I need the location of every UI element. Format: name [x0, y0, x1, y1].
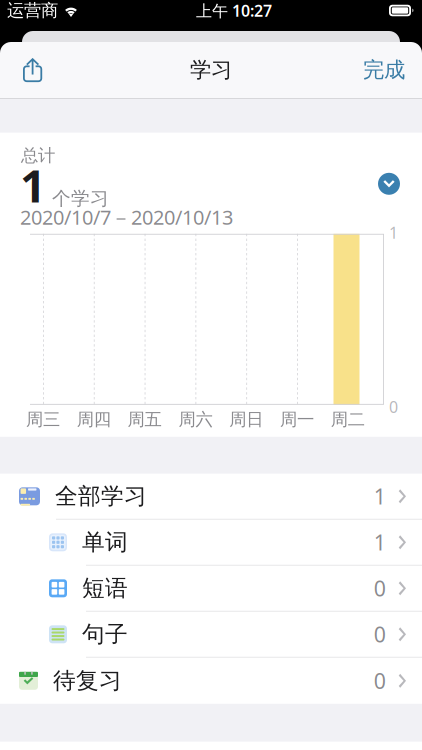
staticText: 1: [389, 222, 398, 243]
staticText: 短语: [82, 574, 128, 602]
staticText: 单词: [82, 528, 128, 556]
staticText: 0: [389, 396, 398, 417]
staticText: 周四: [77, 409, 111, 430]
staticText: 句子: [82, 620, 128, 648]
staticText: 周六: [178, 409, 212, 430]
staticText: 周三: [26, 409, 60, 430]
staticText: 总计: [21, 145, 55, 166]
staticText: 学习: [190, 57, 232, 83]
button[interactable]: Share: [0, 42, 56, 98]
staticText: 周二: [331, 409, 365, 430]
staticText: 1: [20, 155, 46, 215]
button[interactable]: 完成: [346, 42, 422, 98]
button[interactable]: 短语: [0, 566, 422, 612]
button[interactable]: 待复习: [0, 658, 422, 704]
button[interactable]: 单词: [0, 520, 422, 566]
staticText: 0: [374, 574, 386, 602]
staticText: 个学习: [52, 187, 109, 210]
staticText: 1: [374, 482, 386, 510]
staticText: 0: [374, 667, 386, 695]
staticText: 完成: [363, 57, 405, 83]
staticText: 0: [374, 620, 386, 648]
staticText: 运营商: [7, 0, 58, 21]
staticText: 待复习: [53, 667, 122, 695]
staticText: 上午 10:27: [196, 0, 272, 21]
staticText: 2020/10/7－2020/10/13: [20, 204, 233, 230]
staticText: 1: [374, 528, 386, 556]
staticText: 周五: [128, 409, 162, 430]
button[interactable]: Collapse: [378, 173, 400, 195]
button[interactable]: 句子: [0, 612, 422, 658]
staticText: 全部学习: [55, 482, 147, 510]
staticText: 周一: [280, 409, 314, 430]
staticText: 周日: [229, 409, 263, 430]
button[interactable]: 全部学习: [0, 474, 422, 520]
